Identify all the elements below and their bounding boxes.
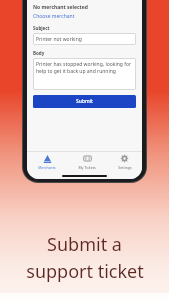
button[interactable]: Merchants bbox=[27, 152, 67, 172]
staticText: Body bbox=[33, 50, 45, 56]
staticText: support ticket bbox=[26, 259, 144, 284]
button[interactable]: Printer not working bbox=[33, 33, 136, 45]
staticText: Printer not working bbox=[36, 36, 82, 43]
staticText: Submit a bbox=[47, 232, 122, 257]
staticText: No merchant selected bbox=[33, 4, 88, 11]
button[interactable]: Printer has stopped working, looking for… bbox=[33, 58, 136, 90]
staticText: Subject bbox=[33, 25, 50, 31]
button[interactable]: Submit bbox=[33, 95, 136, 108]
staticText: Merchants bbox=[38, 165, 56, 170]
button[interactable]: Choose merchant bbox=[33, 13, 75, 20]
button[interactable]: Settings bbox=[107, 152, 142, 172]
button[interactable]: My Tickets bbox=[67, 152, 107, 172]
staticText: Submit bbox=[76, 98, 93, 105]
staticText: My Tickets bbox=[78, 165, 96, 170]
staticText: Settings bbox=[118, 165, 132, 170]
staticText: Choose merchant bbox=[33, 13, 75, 20]
staticText: Printer has stopped working, looking for… bbox=[36, 61, 133, 75]
